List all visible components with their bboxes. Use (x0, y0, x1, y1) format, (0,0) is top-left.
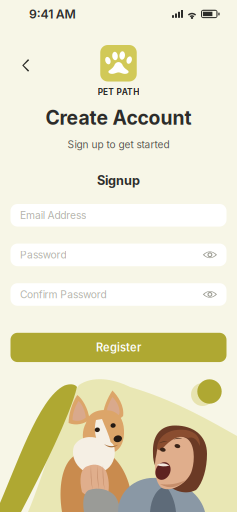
staticText: PET PATH (98, 87, 139, 97)
staticText: Create Account (45, 106, 191, 129)
button[interactable]: Email Address (10, 204, 226, 227)
staticText: Sign up to get started (67, 138, 169, 151)
button[interactable]: Confirm Password (10, 283, 226, 306)
button[interactable]: Back (14, 53, 40, 79)
button[interactable]: Password (10, 244, 226, 266)
staticText: Register (96, 341, 141, 354)
staticText: Email Address (20, 209, 86, 221)
staticText: Signup (97, 173, 140, 188)
staticText: Confirm Password (20, 288, 107, 301)
button[interactable]: Register (10, 333, 226, 362)
staticText: Password (20, 249, 66, 261)
staticText: 9:41 AM (29, 7, 75, 21)
